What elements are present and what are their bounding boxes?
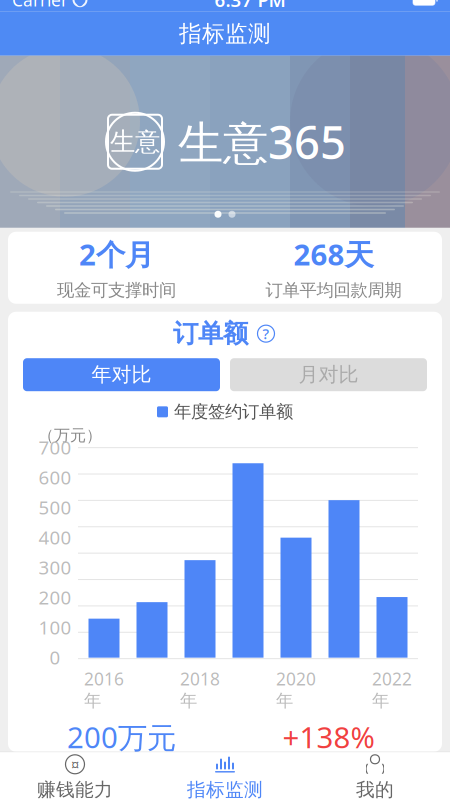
staticText: 生意 <box>110 126 160 157</box>
staticText: 2022年 <box>372 667 412 711</box>
button[interactable]: 268天 <box>225 235 442 301</box>
staticText: 500 <box>38 495 71 520</box>
staticText: 2个月 <box>79 235 154 274</box>
staticText: 400 <box>38 525 71 550</box>
staticText: 6:37 PM <box>214 0 285 12</box>
button[interactable]: 我的 <box>300 752 450 800</box>
staticText: 年对比 <box>91 362 151 387</box>
staticText: 100 <box>38 615 71 640</box>
button[interactable]: 月对比 <box>230 358 427 391</box>
button[interactable]: 指标监测 <box>150 752 300 800</box>
staticText: 指标监测 <box>187 778 263 800</box>
staticText: 268天 <box>293 235 373 274</box>
staticText: 600 <box>38 465 71 490</box>
staticText: ¤ <box>71 754 79 774</box>
staticText: 300 <box>38 555 71 580</box>
staticText: ? <box>262 324 269 343</box>
staticText: 订单平均回款周期 <box>265 280 401 301</box>
staticText: 2020年 <box>276 667 316 711</box>
button[interactable]: ¤ <box>0 752 150 800</box>
staticText: 月对比 <box>298 362 358 387</box>
staticText: +138% <box>282 717 374 756</box>
staticText: 现金可支撑时间 <box>57 280 176 301</box>
staticText: 我的 <box>356 778 394 800</box>
staticText: 700 <box>38 435 71 460</box>
staticText: （万元） <box>38 425 102 445</box>
staticText: 年度签约订单额 <box>174 401 293 422</box>
button[interactable]: 年对比 <box>23 358 220 391</box>
staticText: 生意365 <box>178 112 346 172</box>
staticText: 0 <box>49 645 60 670</box>
button[interactable]: 2个月 <box>8 235 225 301</box>
staticText: 200万元 <box>67 717 176 756</box>
staticText: 赚钱能力 <box>37 778 113 800</box>
staticText: 指标监测 <box>179 20 271 48</box>
button[interactable]: 订单额说明 <box>255 323 277 345</box>
staticText: Carrier <box>12 0 68 11</box>
staticText: 2016年 <box>84 667 124 711</box>
staticText: 200 <box>38 585 71 610</box>
staticText: 订单额 <box>173 318 248 349</box>
staticText: 2018年 <box>180 667 220 711</box>
